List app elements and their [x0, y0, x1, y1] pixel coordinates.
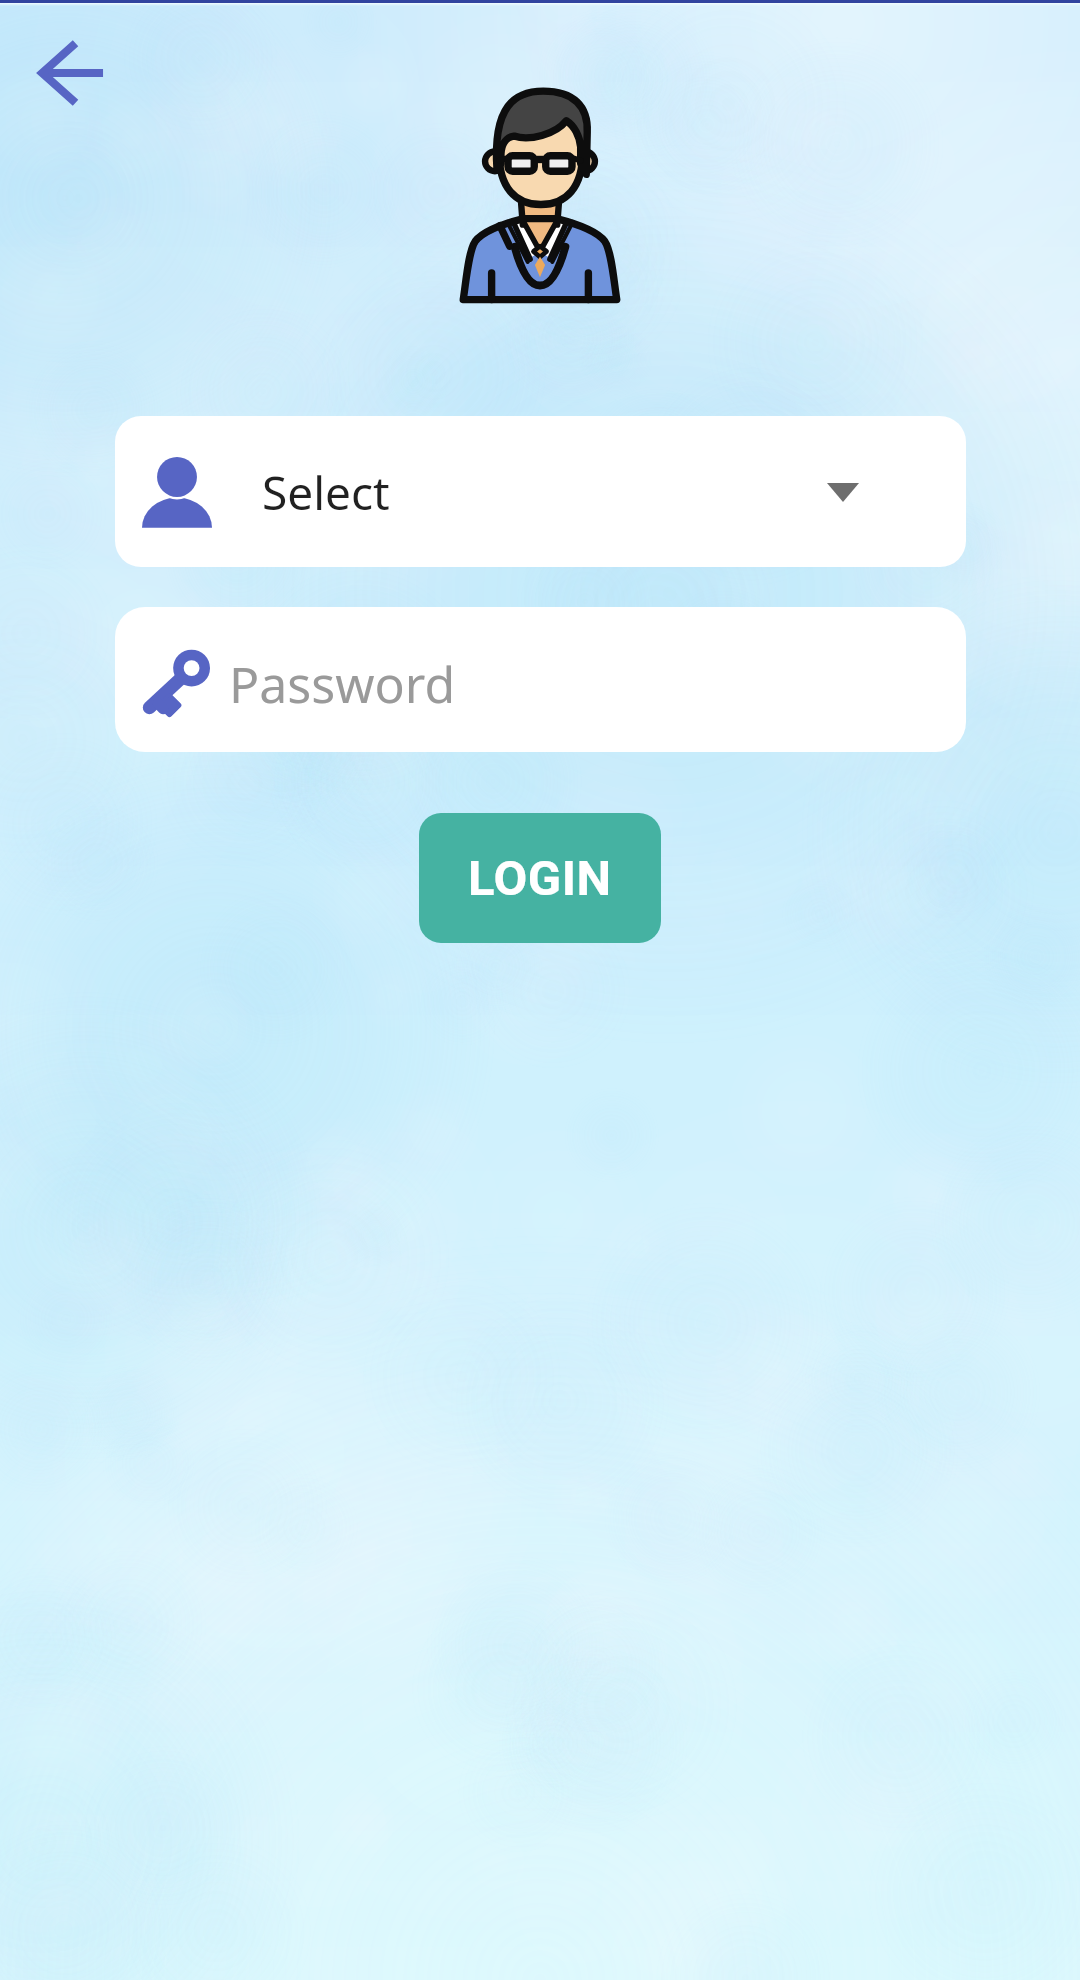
button[interactable]: LOGIN	[419, 813, 661, 943]
staticText: Password	[229, 650, 456, 718]
staticText: Select	[262, 461, 390, 524]
button[interactable]: Back	[22, 23, 122, 123]
staticText: LOGIN	[468, 850, 612, 907]
button[interactable]: Password	[115, 607, 966, 752]
button[interactable]: Select	[115, 416, 966, 567]
